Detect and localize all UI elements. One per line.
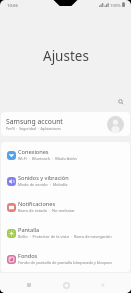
staticText: Fondo de pantalla de pantalla bloqueada … (18, 260, 112, 265)
staticText: Ajustes (43, 47, 89, 65)
staticText: Perfil · Seguridad · Aplicaciones (6, 126, 61, 131)
button[interactable]: Recientes (18, 273, 40, 293)
button[interactable]: Pantalla (1, 220, 130, 246)
staticText: 100% (110, 2, 121, 8)
staticText: Samsung account (6, 117, 63, 126)
staticText: Brillo · Protector de la vista · Barra d… (18, 234, 112, 239)
button[interactable]: Conexiones (1, 142, 130, 168)
button[interactable]: Fondos (1, 246, 130, 272)
staticText: Fondos (18, 252, 38, 260)
staticText: Conexiones (18, 148, 49, 156)
staticText: 10:06 (7, 2, 18, 8)
staticText: Barra de estado · No molestar (18, 208, 75, 213)
staticText: Pantalla (18, 226, 40, 234)
button[interactable]: Sonidos y vibración (1, 168, 130, 194)
staticText: Sonidos y vibración (18, 174, 69, 182)
button[interactable]: Samsung account (1, 112, 130, 136)
staticText: Modo de sonido · Melodía (18, 182, 68, 187)
staticText: Notificaciones (18, 200, 56, 208)
button[interactable]: Notificaciones (1, 194, 130, 220)
button[interactable]: Buscar (114, 95, 127, 108)
staticText: Wi-Fi · Bluetooth · Modo Avión (18, 156, 77, 161)
button[interactable]: Inicio (55, 273, 77, 293)
